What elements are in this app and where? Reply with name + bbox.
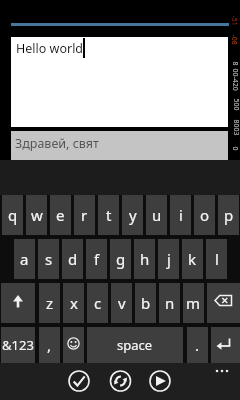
staticText: 500 xyxy=(230,98,240,111)
staticText: s xyxy=(45,249,53,269)
button[interactable]: p xyxy=(218,195,239,235)
button[interactable]: b xyxy=(135,283,156,323)
button[interactable]: g xyxy=(110,239,131,279)
button[interactable]: a xyxy=(14,239,35,279)
button[interactable]: t xyxy=(98,195,119,235)
staticText: e xyxy=(56,205,65,225)
button[interactable]: o xyxy=(194,195,215,235)
button[interactable]: i xyxy=(170,195,191,235)
staticText: g xyxy=(116,249,126,269)
staticText: h xyxy=(140,249,150,269)
staticText: z xyxy=(46,293,54,313)
button[interactable]: v xyxy=(111,283,132,323)
button[interactable]: Здравей, свят xyxy=(11,131,228,160)
staticText: m xyxy=(186,293,201,313)
button[interactable]: y xyxy=(122,195,143,235)
staticText: space xyxy=(117,336,153,354)
button[interactable]: w xyxy=(26,195,47,235)
button[interactable]: q xyxy=(2,195,23,235)
button[interactable]: k xyxy=(182,239,203,279)
staticText: n xyxy=(165,293,175,313)
staticText: d xyxy=(68,249,78,269)
button[interactable]: Hello world xyxy=(11,37,228,127)
staticText: x xyxy=(70,293,78,313)
staticText: j xyxy=(167,249,171,269)
staticText: v xyxy=(118,293,126,313)
button[interactable]: j xyxy=(158,239,179,279)
staticText: k xyxy=(188,249,197,269)
staticText: u xyxy=(152,205,162,225)
button[interactable]: d xyxy=(62,239,83,279)
staticText: &123 xyxy=(2,336,34,354)
staticText: t xyxy=(106,205,112,225)
staticText: 0 xyxy=(229,146,239,151)
button[interactable]: c xyxy=(87,283,108,323)
button[interactable]: &123 xyxy=(1,327,35,363)
staticText: Здравей, свят xyxy=(15,135,99,152)
staticText: -51 xyxy=(228,15,238,26)
staticText: w xyxy=(31,205,43,225)
staticText: l xyxy=(215,249,219,269)
staticText: a xyxy=(20,249,29,269)
staticText: o xyxy=(200,205,210,225)
staticText: , xyxy=(47,335,52,355)
staticText: p xyxy=(224,205,234,225)
button[interactable]: space xyxy=(87,327,183,363)
staticText: q xyxy=(8,205,18,225)
staticText: 8003 xyxy=(230,119,240,136)
button[interactable]: n xyxy=(159,283,180,323)
staticText: 00-420 xyxy=(229,68,239,91)
button[interactable] xyxy=(208,363,238,381)
button[interactable]: . xyxy=(187,327,208,363)
button[interactable]: l xyxy=(206,239,227,279)
button[interactable] xyxy=(1,283,35,323)
button[interactable] xyxy=(207,283,240,323)
staticText: . xyxy=(195,335,200,355)
staticText: b xyxy=(141,293,151,313)
staticText: 8 xyxy=(229,61,239,66)
button[interactable]: m xyxy=(183,283,204,323)
button[interactable]: f xyxy=(86,239,107,279)
button[interactable]: e xyxy=(50,195,71,235)
button[interactable]: s xyxy=(38,239,59,279)
button[interactable]: z xyxy=(39,283,60,323)
staticText: f xyxy=(94,249,100,269)
button[interactable] xyxy=(65,367,93,395)
staticText: i xyxy=(179,205,183,225)
button[interactable]: x xyxy=(63,283,84,323)
button[interactable] xyxy=(106,367,134,395)
staticText: c xyxy=(94,293,102,313)
button[interactable]: h xyxy=(134,239,155,279)
button[interactable] xyxy=(63,327,84,363)
button[interactable]: u xyxy=(146,195,167,235)
button[interactable]: , xyxy=(39,327,60,363)
staticText: Hello world xyxy=(16,40,84,57)
button[interactable] xyxy=(211,327,240,363)
staticText: r xyxy=(81,205,88,225)
button[interactable] xyxy=(146,367,174,395)
staticText: -08 xyxy=(228,34,238,45)
staticText: y xyxy=(129,205,137,225)
button[interactable]: r xyxy=(74,195,95,235)
